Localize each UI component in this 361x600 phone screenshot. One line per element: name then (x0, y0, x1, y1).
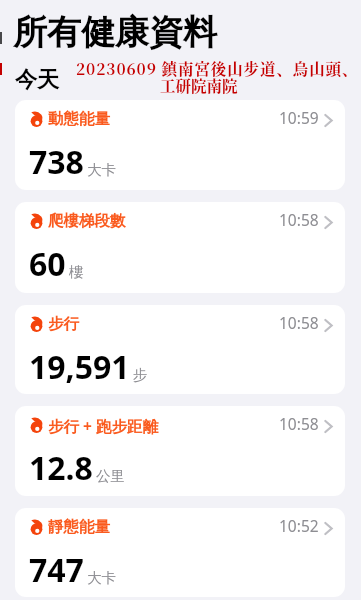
staticText: 19,591 (29, 345, 130, 389)
button[interactable]: 靜態能量 (15, 508, 345, 597)
staticText: 工研院南院 (160, 74, 238, 96)
staticText: 10:58 (279, 413, 319, 434)
button[interactable]: 步行 (15, 305, 345, 394)
button[interactable]: 動態能量 (15, 100, 345, 190)
staticText: 公里 (96, 467, 125, 485)
staticText: 靜態能量 (48, 517, 110, 537)
staticText: 今天 (15, 66, 59, 94)
button[interactable]: 爬樓梯段數 (15, 202, 345, 293)
staticText: 動態能量 (48, 109, 110, 129)
staticText: 步行 (48, 314, 79, 334)
staticText: 10:58 (279, 209, 319, 230)
staticText: 747 (29, 548, 84, 592)
button[interactable]: 步行 + 跑步距離 (15, 406, 345, 496)
staticText: 樓 (69, 263, 84, 281)
staticText: 10:59 (279, 107, 319, 128)
staticText: 20230609 鎮南宮後山步道、烏山頭、 (76, 57, 359, 79)
staticText: 步 (133, 366, 148, 384)
staticText: 12.8 (29, 446, 93, 490)
staticText: 大卡 (87, 161, 116, 179)
staticText: 10:52 (279, 515, 319, 536)
staticText: 所有健康資料 (13, 11, 217, 54)
staticText: 60 (29, 242, 66, 286)
staticText: 步行 + 跑步距離 (48, 415, 158, 436)
staticText: 738 (29, 140, 84, 184)
staticText: 大卡 (87, 569, 116, 587)
staticText: 爬樓梯段數 (48, 211, 126, 231)
staticText: 10:58 (279, 312, 319, 333)
